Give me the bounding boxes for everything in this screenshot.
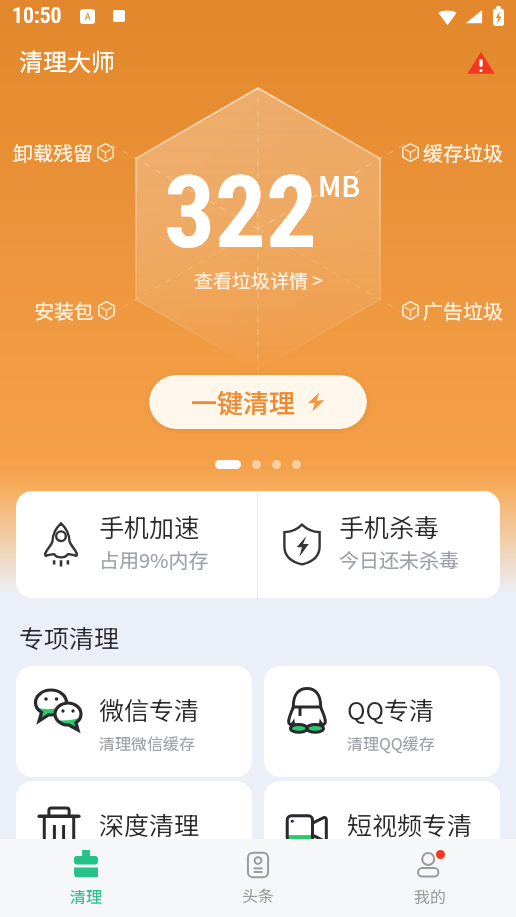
button[interactable]: 广告垃圾 <box>401 292 503 329</box>
button[interactable]: 安装包 <box>34 292 116 329</box>
staticText: 头条 <box>242 883 275 906</box>
staticText: 手机加速 <box>99 508 200 544</box>
staticText: 清理视频缓存 <box>347 846 444 869</box>
button[interactable]: 卸载残留 <box>13 134 115 171</box>
staticText: 今日还未杀毒 <box>339 545 459 574</box>
button[interactable]: 头条 <box>172 839 344 917</box>
staticText: 322 <box>164 153 318 271</box>
button[interactable]: QQ专清 <box>264 666 500 777</box>
staticText: 我的 <box>414 884 447 907</box>
button[interactable]: 查看垃圾详情 > <box>184 262 333 298</box>
staticText: 10:50 <box>12 3 62 29</box>
staticText: 清理 <box>70 884 103 907</box>
button[interactable]: 短视频专清 <box>264 781 500 892</box>
staticText: MB <box>318 165 360 206</box>
staticText: 专项清理 <box>19 619 120 655</box>
staticText: 卸载残留 <box>13 138 93 167</box>
staticText: 查看垃圾详情 > <box>194 266 323 294</box>
button[interactable]: 微信专清 <box>16 666 252 777</box>
staticText: 微信专清 <box>99 691 200 727</box>
button[interactable]: 我的 <box>344 839 516 917</box>
staticText: 清理微信缓存 <box>99 731 196 754</box>
staticText: 缓存垃圾 <box>423 138 503 167</box>
button[interactable]: 手机加速 <box>16 491 257 598</box>
button[interactable]: 清理 <box>0 839 172 917</box>
staticText: 短视频专清 <box>347 806 473 842</box>
staticText: 清理大师 <box>19 43 115 78</box>
staticText: 手机杀毒 <box>339 508 440 544</box>
staticText: 占用9%内存 <box>99 545 209 574</box>
staticText: 广告垃圾 <box>423 296 503 325</box>
staticText: A <box>85 10 91 23</box>
staticText: QQ专清 <box>347 691 435 727</box>
staticText: 安装包 <box>34 296 94 325</box>
staticText: 清理QQ缓存 <box>347 731 435 754</box>
button[interactable]: 缓存垃圾 <box>401 134 503 171</box>
button[interactable]: 手机杀毒 <box>258 491 500 598</box>
button[interactable]: Warning <box>463 45 499 81</box>
button[interactable]: 一键清理 <box>149 375 367 429</box>
button[interactable]: 深度清理 <box>16 781 252 892</box>
staticText: 深度清理 <box>99 806 200 842</box>
staticText: 一键清理 <box>191 383 296 421</box>
